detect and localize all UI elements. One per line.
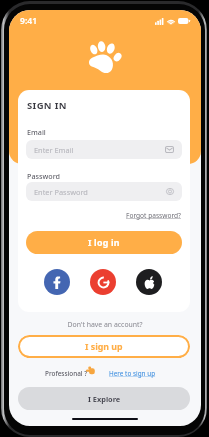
button[interactable]: Forgot password?	[126, 211, 181, 220]
staticText: Enter Password	[34, 187, 88, 197]
staticText: Enter Email	[34, 145, 74, 155]
staticText: I log in	[88, 237, 120, 249]
staticText: Professional ?	[45, 369, 88, 378]
button[interactable]: Enter Password	[26, 182, 182, 201]
button[interactable]: Here to sign up	[109, 369, 156, 378]
button[interactable]: I log in	[26, 231, 182, 254]
button[interactable]: Sign in with Google	[90, 269, 116, 295]
staticText: Password	[27, 171, 61, 181]
button[interactable]: I sign up	[18, 335, 190, 358]
staticText: I Explore	[88, 394, 121, 404]
button[interactable]: Enter Email	[26, 140, 182, 159]
button[interactable]: Sign in with Apple	[136, 269, 162, 295]
staticText: I sign up	[85, 341, 123, 353]
staticText: 9:41	[20, 15, 38, 27]
staticText: Email	[27, 127, 46, 137]
staticText: Don't have an account?	[9, 320, 201, 329]
staticText: SIGN IN	[27, 99, 67, 112]
button[interactable]: I Explore	[18, 387, 190, 410]
button[interactable]: Sign in with Facebook	[44, 269, 70, 295]
